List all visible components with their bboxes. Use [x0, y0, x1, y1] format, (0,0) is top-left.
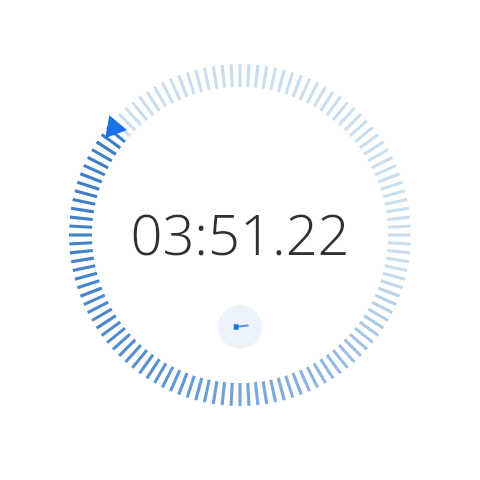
staticText: 03:51.22: [130, 195, 350, 271]
button[interactable]: Lap: [218, 305, 262, 349]
